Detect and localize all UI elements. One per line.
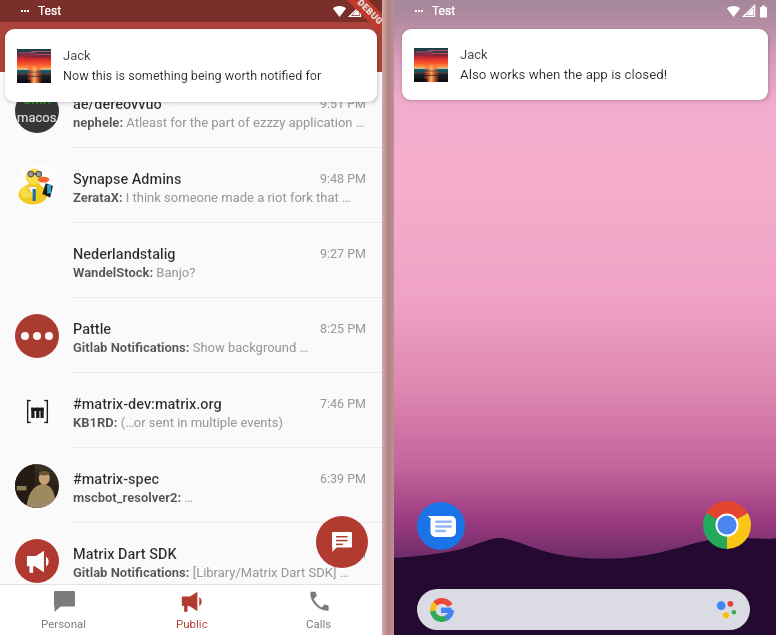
staticText: Calls <box>306 617 332 630</box>
staticText: Personal <box>41 617 87 630</box>
button[interactable]: 9:27 PM <box>0 223 382 298</box>
staticText: Public <box>176 617 208 630</box>
button[interactable]: Personal <box>0 585 128 635</box>
button[interactable]: UMR <box>0 73 382 148</box>
staticText: Pattle <box>73 321 112 338</box>
staticText: nephele: Atleast for the part of ezzzy a… <box>73 115 365 130</box>
staticText: Nederlandstalig <box>73 246 176 263</box>
staticText: 6:39 PM <box>320 471 367 486</box>
staticText: DEBUG <box>355 0 382 28</box>
button[interactable]: 6:39 PM <box>0 448 382 523</box>
staticText: Also works when the app is closed! <box>460 67 668 83</box>
button[interactable]: Chrome <box>703 501 751 549</box>
button[interactable]: Calls <box>255 585 382 635</box>
button[interactable]: 8:25 PM <box>0 298 382 373</box>
button[interactable]: Public <box>128 585 255 635</box>
staticText: Gitlab Notifications: [Library/Matrix Da… <box>73 565 349 580</box>
staticText: Matrix Dart SDK <box>73 546 177 563</box>
staticText: #matrix-spec <box>73 471 160 488</box>
staticText: Synapse Admins <box>73 171 182 188</box>
button[interactable]: Messages <box>417 502 465 550</box>
staticText: Jack <box>460 47 488 62</box>
staticText: Gitlab Notifications: Show background … <box>73 340 309 355</box>
staticText: UMR <box>23 92 51 107</box>
staticText: 9:48 PM <box>320 171 367 186</box>
staticText: 6:10 PM <box>320 546 367 561</box>
staticText: 8:25 PM <box>320 321 367 336</box>
button[interactable]: 6:10 PM <box>0 523 382 598</box>
button[interactable]: 7:46 PM <box>0 373 382 448</box>
button[interactable]: New chat <box>316 516 368 568</box>
button[interactable]: Jack <box>5 29 377 102</box>
staticText: Test <box>432 4 456 18</box>
staticText: WandelStock: Banjo? <box>73 265 196 280</box>
button[interactable]: 9:48 PM <box>0 148 382 223</box>
staticText: mscbot_resolver2: … <box>73 490 193 505</box>
staticText: Now this is something being worth notifi… <box>63 68 322 83</box>
staticText: ae/dereovvuo <box>73 96 162 113</box>
staticText: Jack <box>63 48 91 63</box>
staticText: ZerataX: I think someone made a riot for… <box>73 190 351 205</box>
staticText: #matrix-dev:matrix.org <box>73 396 222 413</box>
staticText: Test <box>38 4 62 18</box>
button[interactable]: Jack <box>402 29 768 100</box>
staticText: 7:46 PM <box>320 396 367 411</box>
button[interactable]: Search <box>417 589 750 630</box>
staticText: 9:51 PM <box>320 96 367 111</box>
staticText: KB1RD: (…or sent in multiple events) <box>73 415 284 430</box>
staticText: macos <box>17 110 57 125</box>
staticText: 9:27 PM <box>320 246 367 261</box>
